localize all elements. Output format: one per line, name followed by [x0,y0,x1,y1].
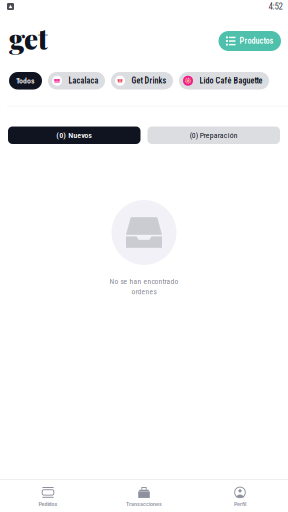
button[interactable]: Perfil [192,480,288,512]
button[interactable]: Lido Café Baguette [179,72,269,89]
button[interactable]: Productos [218,31,281,51]
staticText: Perfil [234,500,246,507]
staticText: get [9,19,48,57]
button[interactable]: (0) Nuevos [8,126,140,144]
staticText: 4:52 [268,1,282,12]
staticText: Transacciones [126,500,162,507]
staticText: Todos [16,76,35,85]
button[interactable]: (0) Preparación [147,126,280,144]
button[interactable]: Pedidos [0,480,96,512]
staticText: Pedidos [38,500,57,507]
staticText: ordenes [131,287,156,296]
staticText: Get Drinks [131,76,166,85]
button[interactable]: Transacciones [96,480,192,512]
staticText: Lacalaca [68,76,98,85]
staticText: (0) Nuevos [56,131,92,140]
staticText: Productos [239,36,273,46]
staticText: No se han encontrado [109,277,178,286]
button[interactable]: Todos [9,72,42,89]
button[interactable]: Get Drinks [111,72,173,89]
staticText: Lido Café Baguette [199,76,262,85]
staticText: (0) Preparación [190,131,238,140]
button[interactable]: Lacalaca [48,72,105,89]
